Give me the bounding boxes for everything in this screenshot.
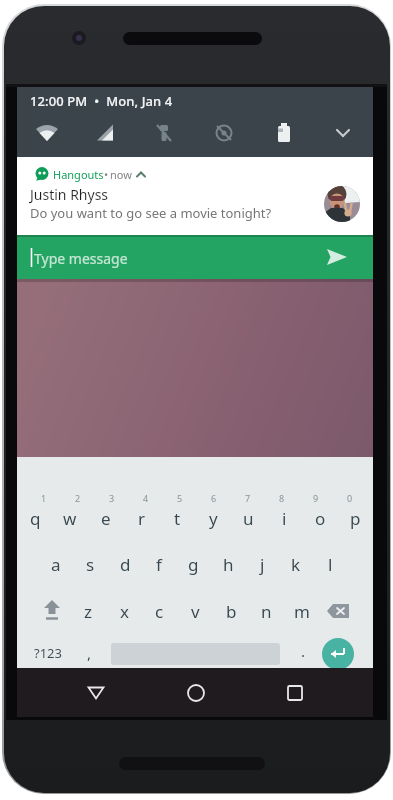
- button[interactable]: k: [278, 550, 314, 578]
- button[interactable]: v: [177, 597, 213, 625]
- staticText: h: [223, 553, 234, 576]
- staticText: 8: [279, 492, 285, 504]
- button[interactable]: .: [285, 637, 321, 665]
- staticText: now: [110, 167, 132, 182]
- button[interactable]: m: [284, 597, 320, 625]
- staticText: Justin Rhyss: [30, 185, 109, 204]
- button[interactable]: h: [210, 550, 246, 578]
- button[interactable]: [180, 677, 212, 709]
- staticText: Hangouts: [53, 167, 104, 182]
- button[interactable]: o: [302, 504, 338, 532]
- button[interactable]: 7: [230, 484, 266, 512]
- staticText: p: [350, 507, 361, 530]
- staticText: q: [30, 507, 41, 530]
- button[interactable]: i: [266, 504, 302, 532]
- staticText: t: [174, 507, 181, 530]
- button[interactable]: j: [244, 550, 280, 578]
- staticText: Type message: [34, 249, 128, 268]
- button[interactable]: 3: [94, 484, 130, 512]
- button[interactable]: [322, 638, 354, 670]
- staticText: d: [120, 553, 131, 576]
- staticText: ?123: [34, 644, 62, 662]
- button[interactable]: y: [195, 504, 231, 532]
- staticText: 0: [347, 492, 353, 504]
- button[interactable]: 9: [298, 484, 334, 512]
- button[interactable]: c: [141, 597, 177, 625]
- button[interactable]: 6: [196, 484, 232, 512]
- button[interactable]: a: [38, 550, 74, 578]
- button[interactable]: ,: [71, 639, 107, 667]
- button[interactable]: [279, 677, 311, 709]
- staticText: •: [104, 167, 109, 182]
- button[interactable]: 1: [26, 484, 62, 512]
- staticText: j: [260, 553, 265, 576]
- staticText: s: [86, 553, 95, 576]
- button[interactable]: q: [17, 504, 53, 532]
- staticText: v: [191, 600, 200, 623]
- button[interactable]: 8: [264, 484, 300, 512]
- button[interactable]: x: [106, 597, 142, 625]
- staticText: b: [226, 600, 237, 623]
- staticText: e: [101, 507, 111, 530]
- staticText: c: [155, 600, 164, 623]
- staticText: Do you want to go see a movie tonight?: [30, 204, 272, 222]
- staticText: 4: [143, 492, 149, 504]
- staticText: u: [243, 507, 254, 530]
- staticText: 6: [211, 492, 217, 504]
- button[interactable]: d: [107, 550, 143, 578]
- button[interactable]: n: [248, 597, 284, 625]
- staticText: n: [261, 600, 272, 623]
- staticText: 3: [109, 492, 115, 504]
- button[interactable]: b: [213, 597, 249, 625]
- staticText: k: [291, 553, 301, 576]
- staticText: l: [328, 553, 333, 576]
- staticText: .: [301, 641, 306, 661]
- button[interactable]: [321, 597, 357, 625]
- staticText: ,: [87, 643, 92, 663]
- staticText: 12:00 PM • Mon, Jan 4: [30, 92, 173, 110]
- button[interactable]: [34, 597, 70, 625]
- button[interactable]: e: [88, 504, 124, 532]
- button[interactable]: z: [70, 597, 106, 625]
- button[interactable]: ?123: [30, 639, 66, 667]
- button[interactable]: g: [175, 550, 211, 578]
- staticText: o: [315, 507, 326, 530]
- staticText: x: [120, 600, 129, 623]
- staticText: z: [84, 600, 92, 623]
- staticText: i: [282, 507, 287, 530]
- staticText: f: [156, 553, 162, 576]
- button[interactable]: r: [124, 504, 160, 532]
- staticText: 5: [177, 492, 183, 504]
- button[interactable]: w: [52, 504, 88, 532]
- button[interactable]: 0: [332, 484, 368, 512]
- staticText: y: [209, 507, 218, 530]
- button[interactable]: p: [337, 504, 373, 532]
- button[interactable]: 5: [162, 484, 198, 512]
- button[interactable]: f: [141, 550, 177, 578]
- button[interactable]: [17, 157, 373, 235]
- staticText: 9: [313, 492, 319, 504]
- staticText: w: [63, 507, 77, 530]
- button[interactable]: 2: [60, 484, 96, 512]
- button[interactable]: [80, 677, 112, 709]
- staticText: a: [51, 553, 61, 576]
- staticText: 7: [245, 492, 251, 504]
- button[interactable]: s: [72, 550, 108, 578]
- button[interactable]: t: [159, 504, 195, 532]
- staticText: m: [294, 600, 310, 623]
- staticText: 1: [41, 492, 47, 504]
- button[interactable]: 4: [128, 484, 164, 512]
- button[interactable]: l: [312, 550, 348, 578]
- button[interactable]: u: [230, 504, 266, 532]
- staticText: g: [188, 553, 199, 576]
- staticText: 2: [75, 492, 81, 504]
- button[interactable]: Type message: [17, 235, 373, 279]
- staticText: r: [138, 507, 146, 530]
